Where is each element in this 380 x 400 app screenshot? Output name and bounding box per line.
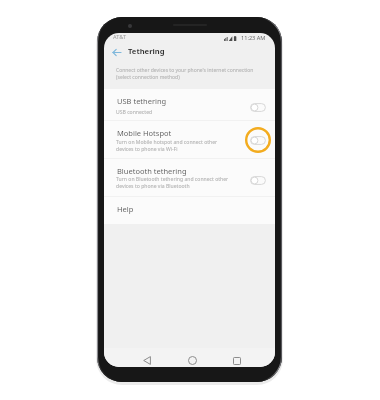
staticText: Tethering [128,46,165,56]
button[interactable]: Mobile Hotspot [104,120,275,158]
button[interactable]: Back [109,45,123,59]
staticText: AT&T [113,33,127,41]
button[interactable]: Back [137,351,157,367]
staticText: Mobile Hotspot [117,128,172,138]
staticText: USB tethering [117,96,167,106]
button[interactable]: Home [182,351,202,367]
button[interactable]: USB tethering [104,89,275,120]
staticText: Turn on Bluetooth tethering and connect … [116,176,229,183]
staticText: USB connected [116,109,153,116]
staticText: 11:23 AM [241,34,266,42]
button[interactable]: Help [104,196,275,224]
button[interactable]: Recent apps [227,351,247,367]
staticText: Turn on Mobile hotspot and connect other [116,139,218,146]
staticText: Help [117,204,134,214]
staticText: Connect other devices to your phone's in… [116,67,254,74]
staticText: (select connection method) [116,74,180,81]
button[interactable]: Bluetooth tethering [104,158,275,196]
staticText: devices to phone via Bluetooth [116,183,190,190]
staticText: Bluetooth tethering [117,166,187,176]
staticText: devices to phone via Wi-Fi [116,146,178,153]
